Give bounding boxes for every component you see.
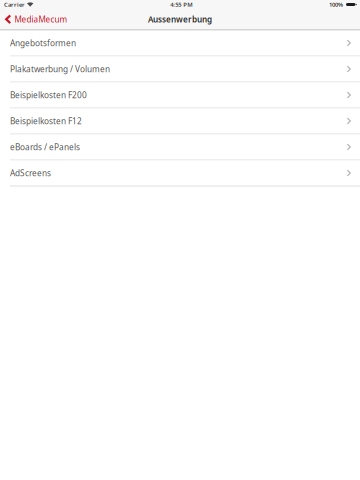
button[interactable]: Plakatwerbung / Volumen — [0, 56, 360, 82]
button[interactable]: Beispielkosten F200 — [0, 82, 360, 108]
staticText: Carrier — [4, 0, 25, 8]
button[interactable]: Beispielkosten F12 — [0, 108, 360, 134]
staticText: Angebotsformen — [10, 37, 76, 49]
staticText: MediaMecum — [14, 14, 67, 25]
button[interactable]: AdScreens — [0, 160, 360, 186]
staticText: Beispielkosten F12 — [10, 115, 82, 127]
button[interactable]: eBoards / ePanels — [0, 134, 360, 160]
button[interactable]: Angebotsformen — [0, 30, 360, 56]
staticText: Plakatwerbung / Volumen — [10, 63, 110, 75]
staticText: Aussenwerbung — [148, 14, 212, 25]
staticText: Beispielkosten F200 — [10, 89, 87, 101]
staticText: eBoards / ePanels — [10, 141, 80, 153]
staticText: 4:55 PM — [170, 0, 192, 8]
button[interactable]: MediaMecum — [0, 9, 74, 29]
staticText: 100% — [329, 0, 343, 8]
staticText: AdScreens — [10, 167, 51, 179]
